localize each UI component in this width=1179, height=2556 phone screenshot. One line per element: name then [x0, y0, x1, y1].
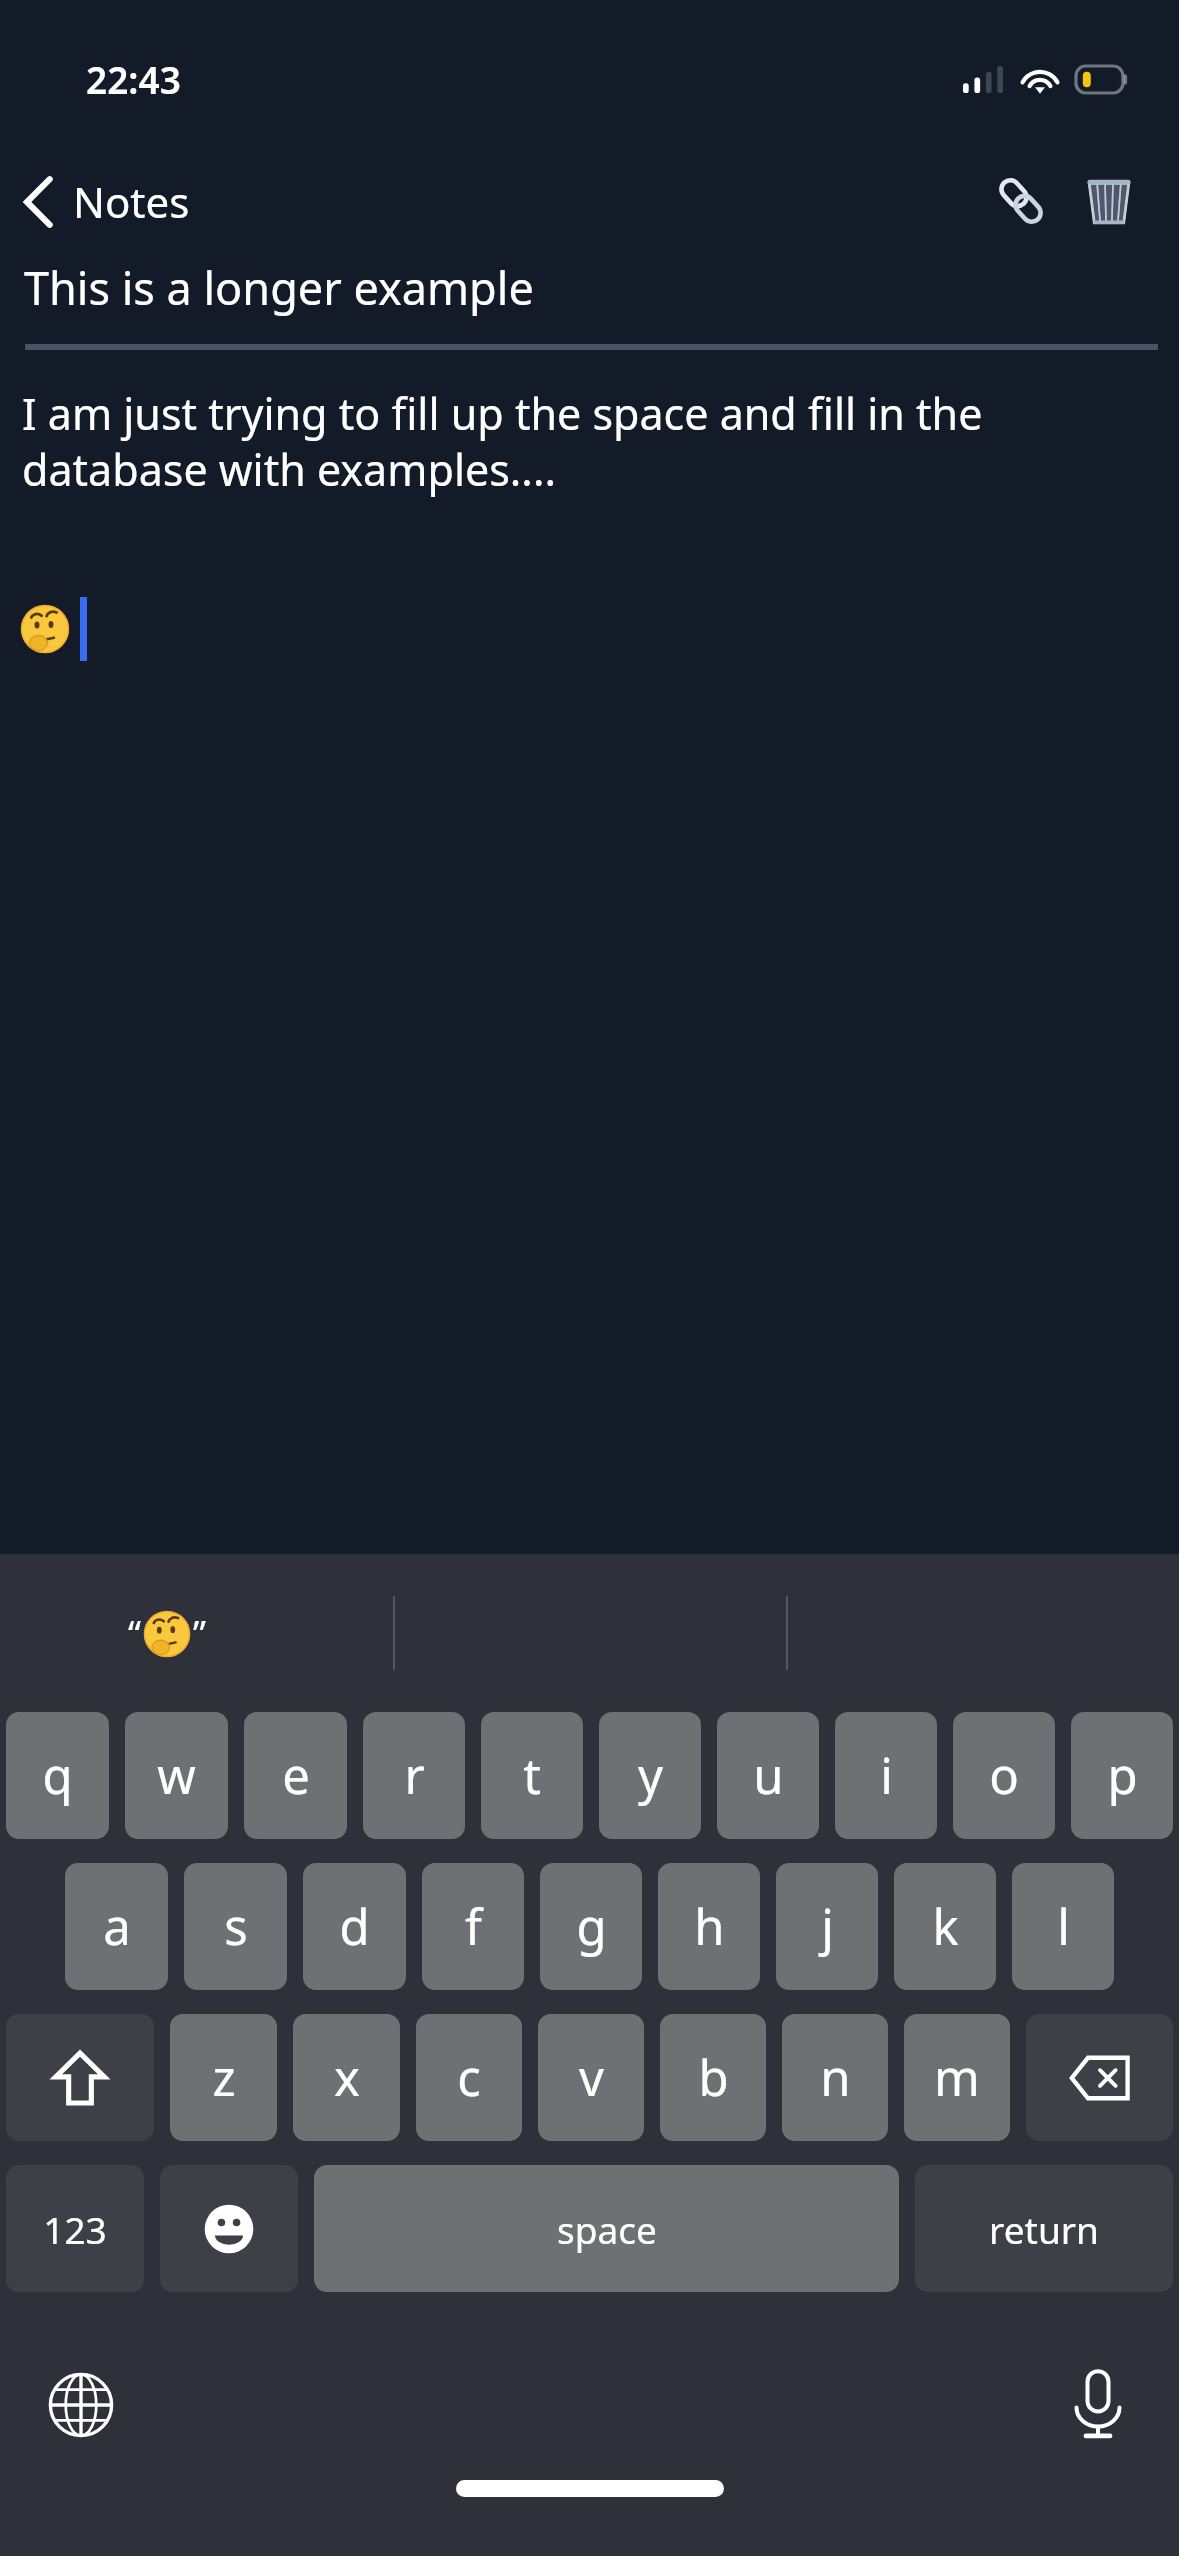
button[interactable]: d: [303, 1863, 406, 1990]
button[interactable]: Notes: [0, 161, 212, 242]
staticText: w: [157, 1742, 196, 1809]
button[interactable]: l: [1012, 1863, 1114, 1990]
staticText: return: [989, 2204, 1099, 2254]
staticText: Notes: [73, 173, 190, 230]
button[interactable]: w: [125, 1712, 228, 1839]
staticText: h: [694, 1893, 725, 1960]
staticText: f: [465, 1893, 482, 1960]
staticText: a: [103, 1893, 131, 1960]
button[interactable]: I am just trying to fill up the space an…: [0, 384, 1179, 499]
staticText: ”: [193, 1609, 206, 1658]
button[interactable]: 123: [6, 2165, 144, 2292]
staticText: q: [42, 1742, 73, 1809]
staticText: c: [457, 2044, 481, 2111]
staticText: “: [128, 1609, 141, 1658]
button[interactable]: Emoji keyboard: [160, 2165, 298, 2292]
button[interactable]: t: [481, 1712, 583, 1839]
button[interactable]: f: [422, 1863, 524, 1990]
button[interactable]: k: [894, 1863, 996, 1990]
staticText: 22:43: [86, 54, 181, 104]
button[interactable]: z: [170, 2014, 277, 2141]
staticText: o: [989, 1742, 1019, 1809]
button[interactable]: y: [599, 1712, 701, 1839]
button[interactable]: return: [915, 2165, 1173, 2292]
button[interactable]: x: [293, 2014, 400, 2141]
staticText: e: [282, 1742, 310, 1809]
button[interactable]: r: [363, 1712, 465, 1839]
button[interactable]: c: [416, 2014, 522, 2141]
staticText: m: [934, 2044, 980, 2111]
staticText: p: [1107, 1742, 1138, 1809]
staticText: g: [576, 1893, 607, 1960]
staticText: n: [820, 2044, 851, 2111]
button[interactable]: e: [244, 1712, 347, 1839]
button[interactable]: This is a longer example: [0, 257, 1179, 318]
button[interactable]: Attach link: [977, 157, 1065, 245]
staticText: r: [404, 1742, 425, 1809]
button[interactable]: g: [540, 1863, 642, 1990]
staticText: i: [880, 1742, 893, 1809]
staticText: l: [1057, 1893, 1070, 1960]
button[interactable]: “: [128, 1609, 206, 1658]
button[interactable]: Backspace: [1026, 2014, 1173, 2141]
staticText: z: [212, 2044, 236, 2111]
staticText: 123: [43, 2204, 107, 2254]
staticText: b: [698, 2044, 729, 2111]
button[interactable]: i: [835, 1712, 937, 1839]
staticText: k: [932, 1893, 959, 1960]
button[interactable]: b: [660, 2014, 766, 2141]
staticText: s: [224, 1893, 248, 1960]
staticText: d: [339, 1893, 370, 1960]
button[interactable]: o: [953, 1712, 1055, 1839]
staticText: space: [557, 2204, 657, 2254]
button[interactable]: h: [658, 1863, 760, 1990]
button[interactable]: Shift: [6, 2014, 154, 2141]
button[interactable]: Switch keyboard language: [36, 2360, 126, 2450]
button[interactable]: u: [717, 1712, 819, 1839]
staticText: v: [579, 2044, 604, 2111]
button[interactable]: n: [782, 2014, 888, 2141]
button[interactable]: v: [538, 2014, 644, 2141]
button[interactable]: Delete note: [1065, 157, 1153, 245]
button[interactable]: s: [184, 1863, 287, 1990]
staticText: y: [638, 1742, 663, 1809]
button[interactable]: j: [776, 1863, 878, 1990]
button[interactable]: Dictate: [1053, 2360, 1143, 2450]
staticText: j: [821, 1893, 834, 1960]
button[interactable]: a: [65, 1863, 168, 1990]
button[interactable]: space: [314, 2165, 899, 2292]
staticText: t: [523, 1742, 541, 1809]
button[interactable]: m: [904, 2014, 1010, 2141]
staticText: x: [334, 2044, 360, 2111]
button[interactable]: q: [6, 1712, 109, 1839]
button[interactable]: p: [1071, 1712, 1173, 1839]
staticText: u: [753, 1742, 784, 1809]
